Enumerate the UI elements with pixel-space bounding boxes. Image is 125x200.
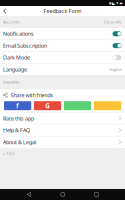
- button[interactable]: Facebook: [4, 101, 31, 110]
- staticText: Help & FAQ: [3, 127, 30, 134]
- button[interactable]: About & Legal: [0, 136, 125, 148]
- staticText: ▮▮: [109, 1, 111, 4]
- staticText: Edit profile: [103, 19, 121, 25]
- staticText: Share with friends: [10, 92, 53, 99]
- button[interactable]: Back: [24, 189, 34, 200]
- staticText: Language: [3, 66, 27, 73]
- button[interactable]: Home: [58, 189, 68, 200]
- button[interactable]: Rate this app: [0, 113, 125, 124]
- staticText: v 1.0.3: [3, 151, 14, 156]
- staticText: G: [45, 101, 50, 110]
- staticText: ◣: [112, 1, 115, 5]
- staticText: Rate this app: [3, 115, 34, 122]
- button[interactable]: Edit profile: [103, 19, 121, 25]
- staticText: ▼: [116, 1, 118, 4]
- button[interactable]: Share with friends: [0, 89, 125, 101]
- staticText: Feedback Form: [43, 7, 81, 15]
- staticText: Email Subscription: [3, 42, 47, 49]
- button[interactable]: Email Subscription: [0, 40, 125, 51]
- staticText: ACCOUNT: [3, 19, 20, 25]
- button[interactable]: WhatsApp: [64, 101, 91, 110]
- staticText: Dark Mode: [3, 54, 30, 61]
- staticText: Notifications: [3, 30, 34, 37]
- staticText: English: [109, 67, 121, 72]
- button[interactable]: Dark Mode: [0, 52, 125, 63]
- staticText: SHARING: [3, 79, 20, 85]
- button[interactable]: Back: [0, 6, 10, 16]
- button[interactable]: Google: [34, 101, 61, 110]
- staticText: About & Legal: [3, 139, 36, 146]
- button[interactable]: Notifications: [0, 28, 125, 39]
- staticText: ▰: [119, 1, 122, 5]
- staticText: f: [16, 101, 19, 110]
- button[interactable]: Language: [0, 64, 125, 75]
- button[interactable]: Recent apps: [91, 190, 101, 199]
- button[interactable]: Help & FAQ: [0, 124, 125, 136]
- button[interactable]: More: [94, 101, 121, 110]
